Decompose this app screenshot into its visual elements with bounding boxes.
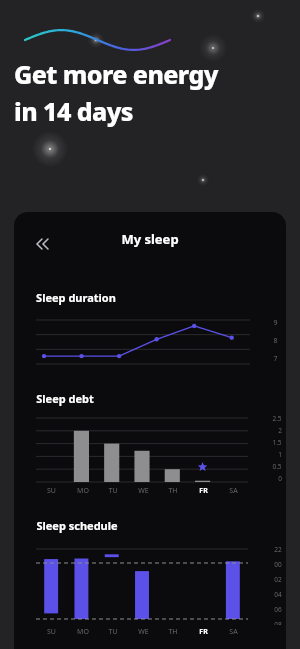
button[interactable]: TU [98, 627, 128, 637]
staticText: 0.5 [272, 462, 282, 471]
button[interactable]: FR [188, 486, 218, 496]
staticText: 06 [274, 605, 282, 614]
button[interactable]: MO [67, 627, 98, 637]
button[interactable]: SU [36, 627, 67, 637]
staticText: 04 [274, 590, 282, 599]
staticText: WE [138, 486, 149, 496]
staticText: 1 [278, 450, 282, 459]
staticText: FR [199, 486, 208, 496]
button[interactable]: SA [218, 627, 248, 637]
staticText: TU [108, 486, 118, 496]
button[interactable]: FR [188, 627, 218, 637]
button[interactable]: WE [128, 486, 158, 496]
staticText: MO [77, 627, 89, 637]
button[interactable]: TH [158, 486, 188, 496]
staticText: My sleep [121, 230, 179, 248]
staticText: Sleep schedule [36, 518, 118, 533]
button[interactable]: TU [98, 486, 128, 496]
staticText: 2 [278, 426, 282, 435]
staticText: TH [168, 627, 178, 637]
button[interactable]: WE [128, 627, 158, 637]
staticText: 0 [278, 474, 282, 483]
button[interactable]: TH [158, 627, 188, 637]
staticText: 7 [273, 354, 278, 364]
button[interactable]: SA [218, 486, 248, 496]
staticText: 02 [274, 575, 282, 584]
staticText: Get more energy [14, 57, 218, 91]
staticText: 1.5 [272, 438, 282, 447]
staticText: TU [108, 627, 118, 637]
staticText: 22 [274, 545, 282, 554]
staticText: Sleep duration [36, 290, 116, 305]
staticText: Sleep debt [36, 391, 94, 406]
staticText: SU [47, 627, 56, 637]
staticText: MO [77, 486, 89, 496]
staticText: SU [47, 486, 56, 496]
staticText: TH [168, 486, 178, 496]
staticText: 2.5 [272, 414, 282, 423]
button[interactable]: Back [26, 230, 58, 258]
staticText: FR [199, 627, 208, 637]
staticText: in 14 days [14, 94, 133, 128]
staticText: 8 [273, 336, 278, 346]
staticText: SA [229, 627, 238, 637]
button[interactable]: MO [67, 486, 98, 496]
staticText: WE [138, 627, 149, 637]
staticText: 00 [274, 560, 282, 569]
staticText: SA [229, 486, 238, 496]
staticText: 08 [274, 620, 282, 625]
staticText: 9 [273, 318, 278, 328]
button[interactable]: SU [36, 486, 67, 496]
